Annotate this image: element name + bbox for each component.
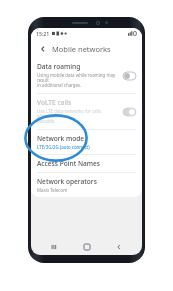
- staticText: 15:21: [36, 30, 50, 37]
- button[interactable]: Home: [77, 239, 97, 255]
- staticText: Data roaming: [37, 62, 81, 71]
- button[interactable]: Toggle on: [123, 108, 136, 116]
- staticText: Maxis Telecom: [37, 187, 68, 193]
- button[interactable]: Back: [109, 239, 129, 255]
- button[interactable]: Toggle off: [123, 72, 136, 80]
- staticText: Use LTE data networks for calls whenever…: [37, 108, 119, 125]
- staticText: VoLTE calls: [37, 98, 72, 107]
- button[interactable]: Network mode: [31, 130, 142, 154]
- staticText: Access Point Names: [37, 159, 101, 168]
- button[interactable]: Access Point Names: [31, 155, 142, 172]
- button[interactable]: VoLTE calls: [31, 94, 142, 129]
- staticText: LTE/3G/2G (auto connect): [37, 144, 90, 150]
- button[interactable]: Back: [37, 43, 49, 55]
- button[interactable]: Recents: [44, 239, 64, 255]
- button[interactable]: Data roaming: [31, 58, 142, 93]
- staticText: Network operators: [37, 177, 97, 186]
- staticText: Using mobile data while roaming may resu…: [37, 72, 119, 89]
- button[interactable]: Network operators: [31, 173, 142, 197]
- staticText: Mobile networks: [52, 44, 111, 54]
- staticText: Network mode: [37, 134, 85, 143]
